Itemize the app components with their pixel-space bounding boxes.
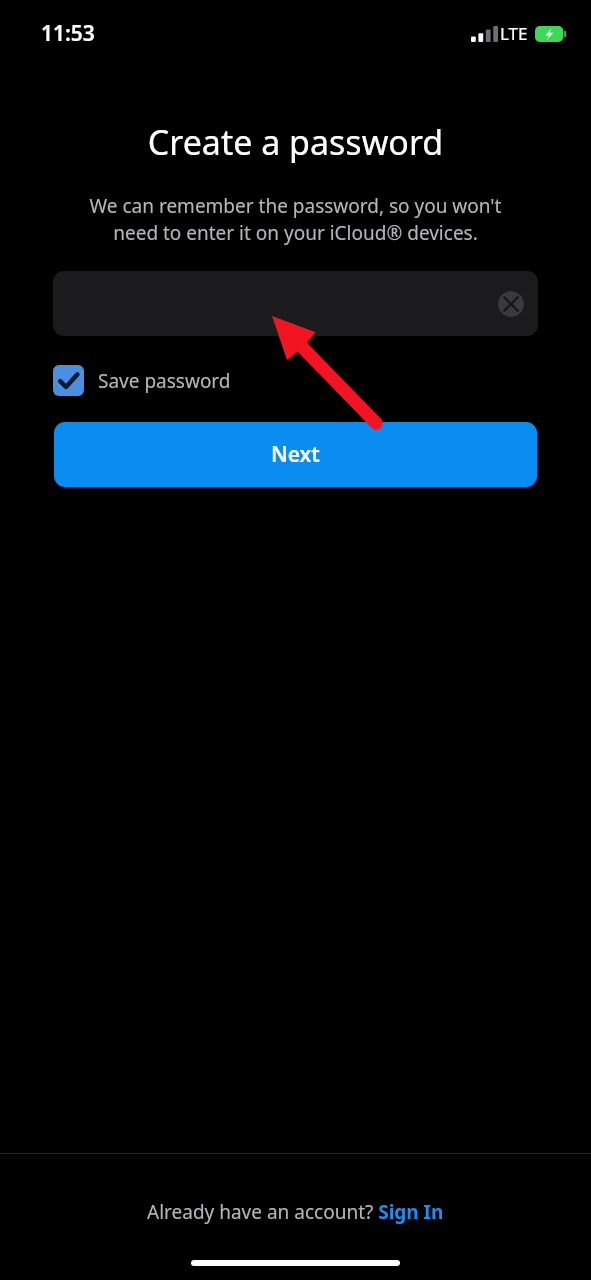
staticText: Save password (98, 368, 231, 394)
button[interactable]: Clear text (53, 271, 538, 336)
staticText: LTE (500, 22, 528, 45)
button[interactable]: Save password (53, 365, 231, 396)
button[interactable]: Next (54, 422, 537, 487)
staticText: We can remember the password, so you won… (28, 193, 563, 246)
staticText: Create a password (0, 119, 591, 165)
button[interactable]: Clear text (498, 291, 524, 317)
button[interactable]: Already have an account? Sign In (0, 1199, 591, 1225)
staticText: Already have an account? Sign In (147, 1199, 444, 1225)
staticText: 11:53 (41, 19, 95, 48)
staticText: Next (271, 440, 320, 469)
